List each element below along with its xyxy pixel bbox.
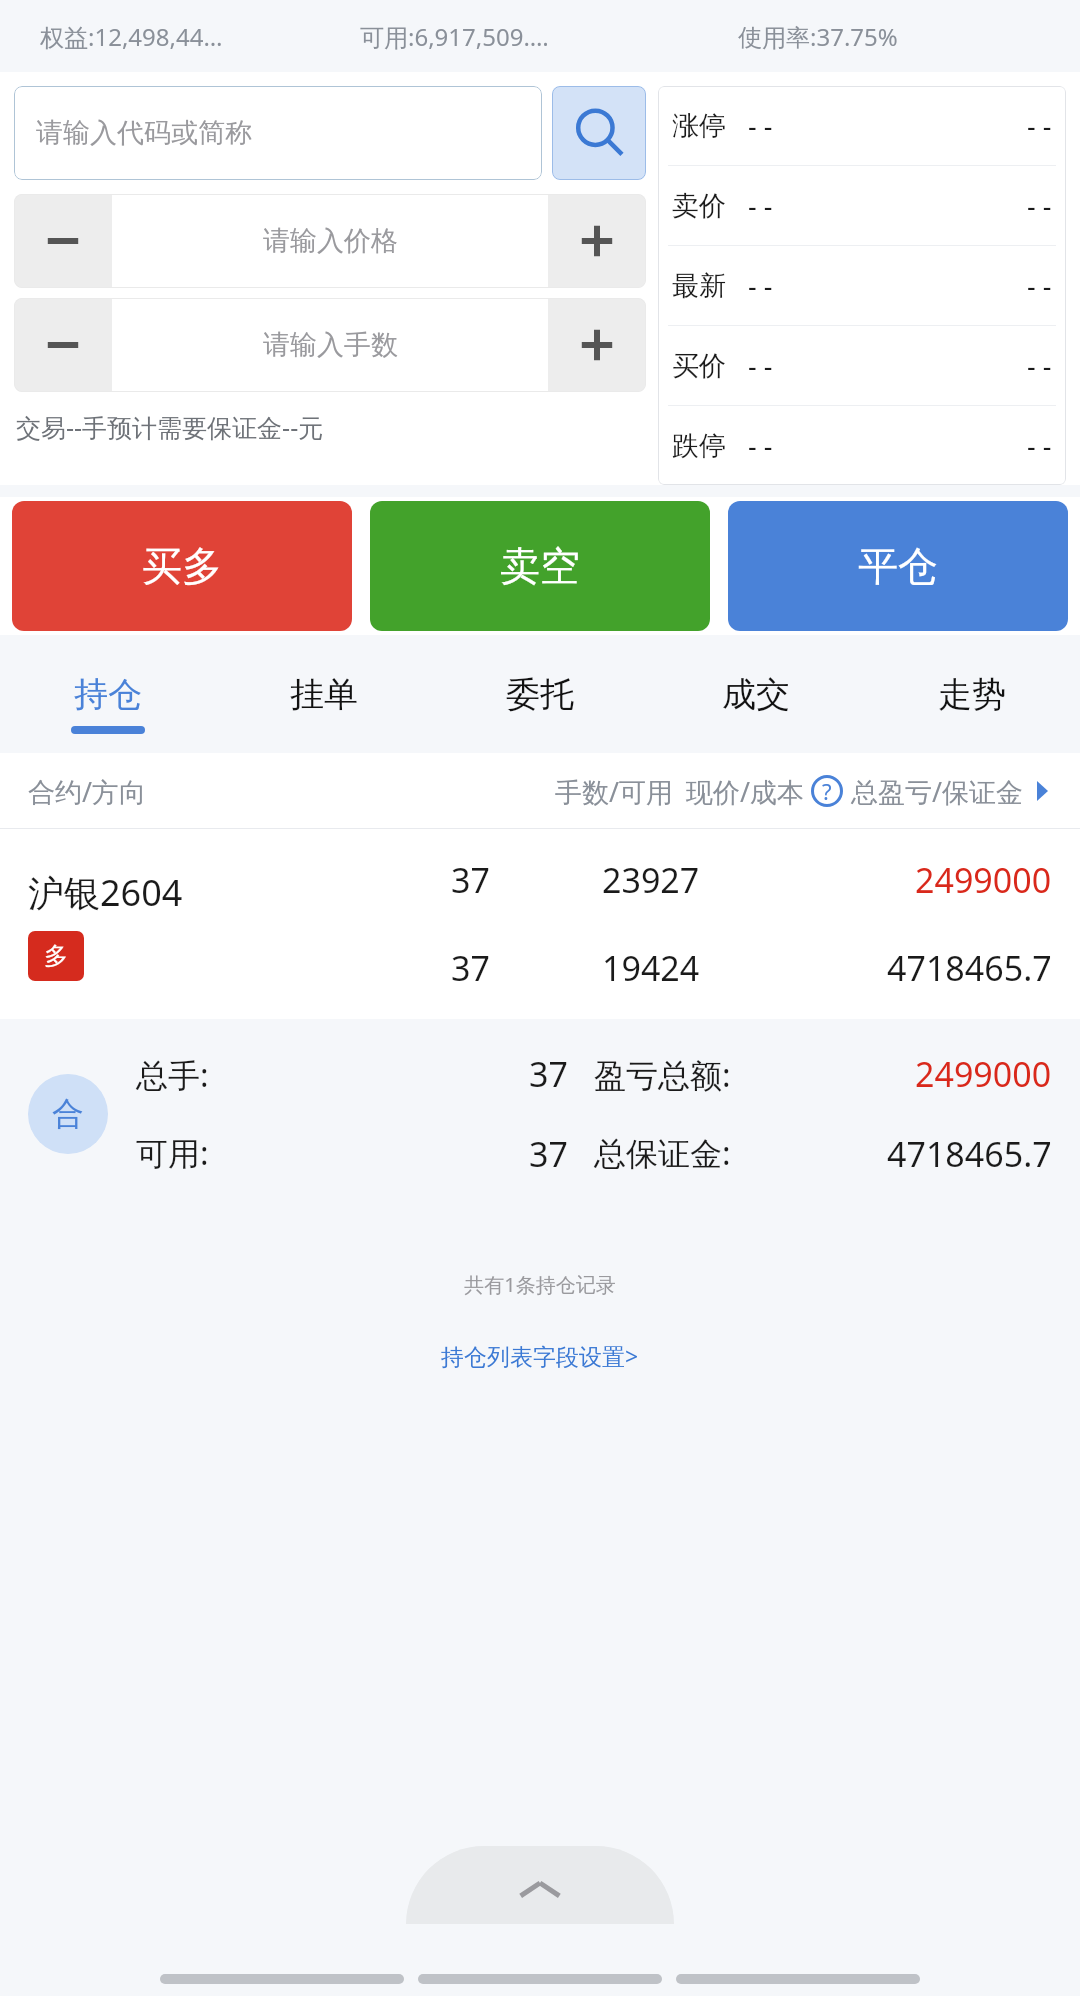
staticText: 总手: (136, 1053, 209, 1097)
staticText: 4718465.7 (887, 945, 1052, 991)
staticText: 23927 (602, 857, 700, 903)
staticText: - - (1027, 187, 1052, 224)
button[interactable]: Search (552, 86, 646, 180)
button[interactable]: 卖空 (370, 501, 710, 631)
staticText: 现价/成本 (686, 773, 805, 810)
button[interactable]: 持仓 (0, 653, 216, 753)
staticText: 委托 (506, 673, 574, 716)
button[interactable]: 请输入价格 (112, 194, 548, 288)
staticText: 买多 (142, 541, 222, 591)
staticText: 37 (451, 945, 490, 991)
button[interactable]: Expand (406, 1846, 674, 1924)
staticText: - - (1027, 107, 1052, 144)
button[interactable]: 持仓列表字段设置> (0, 1340, 1080, 1371)
staticText: 使用率:37.75% (738, 20, 1080, 53)
staticText: 交易--手预计需要保证金--元 (16, 410, 324, 444)
staticText: 卖空 (500, 541, 580, 591)
staticText: 多 (44, 941, 68, 971)
button[interactable]: Decrease (14, 194, 112, 288)
staticText: 持仓列表字段设置> (441, 1340, 639, 1371)
staticText: 可用: (136, 1131, 209, 1175)
staticText: 买价 (672, 349, 726, 383)
staticText: - - (1027, 347, 1052, 384)
button[interactable]: 沪银2604 (0, 829, 1080, 1019)
staticText: 共有1条持仓记录 (0, 1271, 1080, 1298)
staticText: - - (748, 267, 773, 304)
staticText: - - (748, 187, 773, 224)
staticText: 持仓 (74, 673, 142, 716)
staticText: - - (748, 107, 773, 144)
staticText: 沪银2604 (28, 868, 183, 917)
staticText: 可用:6,917,509.… (360, 20, 738, 53)
staticText: 走势 (938, 673, 1006, 716)
staticText: 请输入代码或简称 (36, 116, 252, 150)
staticText: 总盈亏/保证金 (851, 773, 1024, 810)
staticText: 涨停 (672, 109, 726, 143)
button[interactable]: 平仓 (728, 501, 1068, 631)
staticText: 2499000 (915, 1051, 1052, 1097)
staticText: 卖价 (672, 189, 726, 223)
button[interactable]: Decrease (14, 298, 112, 392)
staticText: 合 (52, 1094, 84, 1134)
button[interactable]: 委托 (432, 653, 648, 753)
button[interactable]: 请输入代码或简称 (14, 86, 542, 180)
button[interactable]: 买多 (12, 501, 352, 631)
button[interactable]: 挂单 (216, 653, 432, 753)
staticText: 37 (451, 857, 490, 903)
button[interactable]: 成交 (648, 653, 864, 753)
staticText: ? (822, 776, 832, 806)
staticText: 37 (529, 1131, 568, 1177)
staticText: - - (1027, 267, 1052, 304)
staticText: 19424 (602, 945, 700, 991)
button[interactable]: 请输入手数 (112, 298, 548, 392)
staticText: - - (748, 427, 773, 464)
staticText: 最新 (672, 269, 726, 303)
staticText: 手数/可用 (555, 773, 674, 810)
staticText: 请输入价格 (263, 224, 398, 258)
staticText: 成交 (722, 673, 790, 716)
staticText: 37 (529, 1051, 568, 1097)
staticText: 请输入手数 (263, 328, 398, 362)
staticText: - - (748, 347, 773, 384)
button[interactable]: Help (811, 775, 843, 807)
staticText: 挂单 (290, 673, 358, 716)
staticText: 4718465.7 (887, 1131, 1052, 1177)
staticText: 权益:12,498,44… (40, 20, 360, 53)
staticText: 2499000 (915, 857, 1052, 903)
button[interactable]: Increase (548, 194, 646, 288)
button[interactable]: 走势 (864, 653, 1080, 753)
staticText: - - (1027, 427, 1052, 464)
staticText: 跌停 (672, 429, 726, 463)
button[interactable]: Increase (548, 298, 646, 392)
staticText: 平仓 (858, 541, 938, 591)
staticText: 总保证金: (594, 1131, 731, 1175)
staticText: 盈亏总额: (594, 1053, 731, 1097)
staticText: 合约/方向 (28, 773, 147, 810)
